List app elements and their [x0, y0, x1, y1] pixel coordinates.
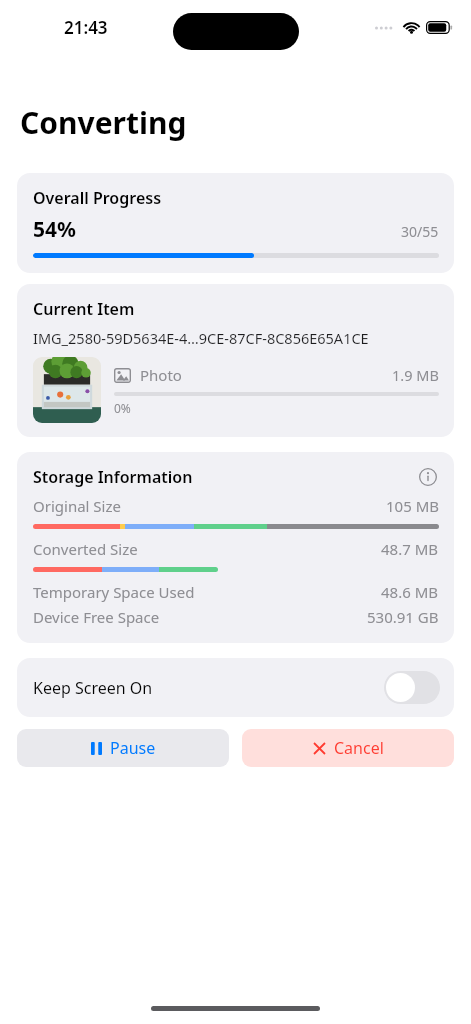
button[interactable]: Keep Screen On: [17, 658, 454, 717]
staticText: Photo: [140, 365, 182, 385]
staticText: 48.6 MB: [381, 582, 439, 602]
staticText: 30/55: [401, 222, 439, 241]
staticText: IMG_2580-59D5634E-4…9CE-87CF-8C856E65A1C…: [33, 328, 369, 348]
staticText: Pause: [110, 737, 156, 759]
staticText: Current Item: [33, 298, 135, 320]
button[interactable]: Pause: [17, 729, 229, 767]
staticText: Converted Size: [33, 539, 138, 559]
staticText: Device Free Space: [33, 607, 160, 627]
other: Keep Screen On toggle: [384, 671, 440, 704]
staticText: Cancel: [334, 737, 384, 759]
staticText: 1.9 MB: [392, 365, 439, 385]
staticText: 105 MB: [386, 496, 439, 516]
staticText: 530.91 GB: [367, 607, 439, 627]
staticText: Converting: [20, 102, 187, 143]
staticText: Overall Progress: [33, 187, 162, 209]
staticText: Original Size: [33, 496, 121, 516]
staticText: Temporary Space Used: [33, 582, 195, 602]
button[interactable]: Storage info: [417, 466, 439, 488]
staticText: 48.7 MB: [381, 539, 439, 559]
staticText: 21:43: [64, 16, 108, 39]
button[interactable]: Cancel: [242, 729, 454, 767]
staticText: 0%: [114, 400, 131, 416]
staticText: Keep Screen On: [33, 677, 153, 699]
staticText: 54%: [33, 215, 76, 244]
staticText: Storage Information: [33, 466, 193, 488]
